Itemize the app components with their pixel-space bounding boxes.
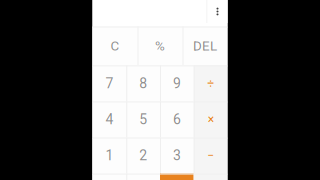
staticText: C bbox=[110, 38, 119, 54]
button[interactable]: 4 bbox=[92, 101, 126, 137]
staticText: 1 bbox=[105, 147, 113, 164]
staticText: DEL bbox=[193, 38, 217, 54]
button[interactable]: 2 bbox=[126, 137, 160, 173]
button[interactable]: More options bbox=[207, 0, 227, 23]
staticText: − bbox=[207, 148, 214, 163]
button[interactable]: . bbox=[126, 174, 160, 180]
staticText: 3 bbox=[173, 147, 181, 164]
staticText: 2 bbox=[139, 147, 147, 164]
button[interactable]: × bbox=[194, 101, 228, 137]
button[interactable]: ÷ bbox=[194, 65, 228, 101]
button[interactable]: 5 bbox=[126, 101, 160, 137]
staticText: % bbox=[155, 38, 165, 54]
staticText: 7 bbox=[105, 75, 113, 92]
button[interactable]: 9 bbox=[160, 65, 194, 101]
staticText: 5 bbox=[139, 111, 147, 128]
button[interactable]: % bbox=[137, 26, 182, 65]
button[interactable]: C bbox=[92, 26, 137, 65]
button[interactable]: + bbox=[194, 174, 228, 180]
button[interactable]: 6 bbox=[160, 101, 194, 137]
button[interactable]: = bbox=[160, 174, 194, 180]
staticText: 8 bbox=[139, 75, 147, 92]
button[interactable]: 0 bbox=[92, 174, 126, 180]
staticText: ÷ bbox=[207, 76, 214, 90]
staticText: 9 bbox=[173, 75, 181, 92]
button[interactable]: DEL bbox=[182, 26, 227, 65]
button[interactable]: − bbox=[194, 137, 228, 173]
button[interactable]: 3 bbox=[160, 137, 194, 173]
staticText: 4 bbox=[105, 111, 113, 128]
button[interactable]: 1 bbox=[92, 137, 126, 173]
staticText: 6 bbox=[173, 111, 181, 128]
staticText: × bbox=[208, 112, 214, 126]
button[interactable]: 7 bbox=[92, 65, 126, 101]
button[interactable]: 8 bbox=[126, 65, 160, 101]
